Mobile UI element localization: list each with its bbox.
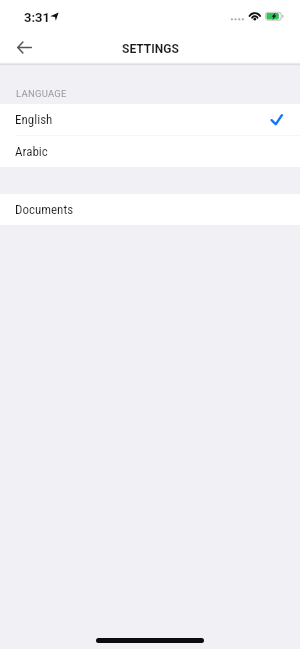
button[interactable]: English — [0, 104, 300, 135]
staticText: Documents — [15, 202, 74, 217]
button[interactable]: Arabic — [0, 135, 300, 167]
staticText: 3:31 — [24, 10, 51, 25]
staticText: LANGUAGE — [16, 88, 67, 99]
staticText: Arabic — [15, 144, 48, 159]
button[interactable]: Back — [8, 32, 40, 63]
staticText: SETTINGS — [122, 42, 179, 56]
staticText: English — [15, 112, 53, 127]
button[interactable]: Documents — [0, 194, 300, 225]
